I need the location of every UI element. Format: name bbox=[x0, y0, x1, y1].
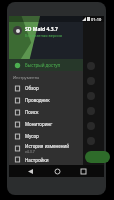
staticText: 01:10 bbox=[91, 17, 102, 22]
staticText: Проводник bbox=[25, 97, 50, 103]
staticText: Мусор bbox=[25, 133, 39, 139]
staticText: Мониторинг bbox=[25, 121, 53, 127]
button[interactable] bbox=[9, 103, 104, 118]
button[interactable] bbox=[9, 133, 104, 148]
button[interactable] bbox=[9, 73, 104, 88]
button[interactable]: Проводник bbox=[9, 94, 83, 106]
staticText: v4.3.7 bbox=[25, 149, 35, 154]
button[interactable]: Поиск bbox=[9, 106, 83, 118]
button[interactable]: Scan bbox=[85, 151, 110, 163]
staticText: Настройки bbox=[25, 157, 49, 163]
staticText: Быстрый доступ bbox=[25, 62, 61, 68]
button[interactable] bbox=[9, 58, 104, 73]
staticText: Бесплатная версия bbox=[25, 33, 63, 38]
button[interactable]: Быстрый доступ bbox=[9, 59, 83, 71]
button[interactable]: Настройки bbox=[9, 154, 83, 165]
button[interactable]: Обзор bbox=[9, 82, 83, 94]
staticText: История изменений bbox=[25, 143, 70, 149]
staticText: Поиск bbox=[25, 109, 39, 115]
button[interactable]: Recents bbox=[78, 166, 88, 176]
button[interactable] bbox=[9, 118, 104, 133]
staticText: Обзор bbox=[25, 85, 39, 91]
button[interactable]: Back bbox=[25, 166, 35, 176]
button[interactable]: Мусор bbox=[9, 130, 83, 142]
button[interactable]: Мониторинг bbox=[9, 118, 83, 130]
staticText: SD Maid 4.3.7 bbox=[25, 26, 58, 33]
button[interactable] bbox=[9, 88, 104, 103]
button[interactable]: История изменений bbox=[9, 142, 83, 154]
staticText: Инструменты bbox=[13, 75, 40, 80]
button[interactable]: Home bbox=[52, 166, 62, 176]
